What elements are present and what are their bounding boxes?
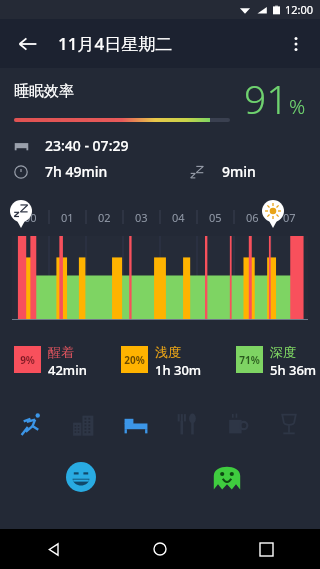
staticText: 91 (244, 72, 289, 125)
staticText: 42min (48, 361, 87, 379)
button[interactable]: More options (276, 24, 316, 64)
staticText: 1h 30m (155, 361, 202, 379)
button[interactable]: Back (0, 529, 106, 569)
staticText: 02 (98, 210, 111, 224)
staticText: % (289, 93, 306, 120)
button[interactable]: Mood ghost (212, 462, 242, 492)
button[interactable]: Home (106, 529, 213, 569)
staticText: 04 (172, 210, 185, 224)
button[interactable]: Coffee (212, 398, 263, 450)
staticText: 00 (24, 210, 37, 224)
button[interactable]: Recent apps (213, 529, 320, 569)
staticText: 醒着 (48, 344, 74, 360)
staticText: 20% (124, 353, 145, 367)
staticText: 05 (209, 210, 222, 224)
button[interactable]: Back (8, 24, 48, 64)
staticText: 11月4日星期二 (58, 32, 173, 55)
staticText: 7h 49min (45, 162, 108, 181)
staticText: 06 (246, 210, 259, 224)
button[interactable]: 9% (14, 344, 87, 379)
staticText: 深度 (270, 344, 296, 360)
staticText: 07 (283, 210, 296, 224)
staticText: 9% (20, 353, 35, 367)
staticText: 12:00 (285, 2, 314, 17)
staticText: 5h 36m (270, 361, 317, 379)
staticText: 71% (239, 353, 260, 367)
staticText: 03 (135, 210, 148, 224)
button[interactable]: Sleep (110, 398, 161, 450)
staticText: 浅度 (155, 344, 181, 360)
staticText: 睡眠效率 (14, 82, 74, 101)
button[interactable]: 71% (236, 344, 317, 379)
staticText: 01 (61, 210, 74, 224)
button[interactable]: 20% (121, 344, 202, 379)
button[interactable]: Exercise (6, 398, 58, 450)
staticText: 9min (222, 162, 256, 181)
button[interactable]: Food (161, 398, 212, 450)
button[interactable]: Work (58, 398, 110, 450)
button[interactable]: Mood happy (66, 462, 96, 492)
staticText: 23:40 - 07:29 (45, 136, 129, 155)
